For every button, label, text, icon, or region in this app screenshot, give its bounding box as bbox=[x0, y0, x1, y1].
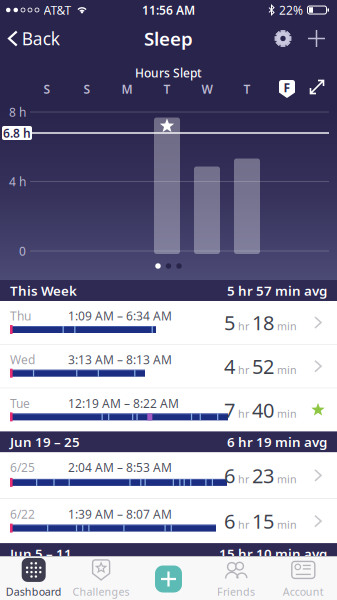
button[interactable]: Account bbox=[270, 556, 337, 600]
staticText: Back bbox=[22, 27, 60, 50]
staticText: Account bbox=[283, 584, 324, 599]
button[interactable] bbox=[135, 556, 202, 600]
staticText: 6 bbox=[224, 462, 235, 489]
staticText: 22% bbox=[279, 2, 303, 18]
staticText: 1:09 AM – 6:34 AM bbox=[68, 308, 172, 324]
staticText: 23 bbox=[252, 462, 274, 489]
staticText: 12:19 AM – 8:22 AM bbox=[68, 395, 179, 411]
button[interactable]: Back bbox=[0, 27, 60, 50]
button[interactable]: 6/25 bbox=[0, 452, 337, 498]
staticText: This Week bbox=[10, 282, 77, 299]
button[interactable]: Wed bbox=[0, 345, 337, 388]
staticText: Thu bbox=[10, 308, 31, 324]
staticText: 8 h bbox=[9, 104, 26, 120]
staticText: 4 bbox=[224, 353, 235, 379]
staticText: min bbox=[277, 472, 297, 486]
staticText: Dashboard bbox=[6, 584, 62, 599]
staticText: 6 bbox=[224, 508, 235, 534]
staticText: Friends bbox=[217, 584, 255, 599]
staticText: min bbox=[277, 363, 297, 377]
staticText: 6.8 h bbox=[3, 125, 31, 141]
staticText: S bbox=[83, 81, 90, 97]
staticText: min bbox=[277, 319, 297, 333]
staticText: 15 hr 10 min avg bbox=[219, 545, 327, 562]
staticText: 40 bbox=[252, 397, 274, 423]
staticText: 15 bbox=[252, 508, 274, 534]
button[interactable] bbox=[307, 77, 327, 97]
button[interactable]: Thu bbox=[0, 301, 337, 344]
staticText: hr bbox=[238, 472, 249, 486]
staticText: Wed bbox=[10, 352, 35, 368]
staticText: 5 bbox=[224, 309, 235, 336]
staticText: hr bbox=[238, 518, 249, 532]
staticText: 6/22 bbox=[10, 506, 35, 522]
staticText: W bbox=[201, 81, 212, 97]
staticText: hr bbox=[238, 363, 249, 377]
staticText: 11:56 AM bbox=[142, 2, 195, 18]
staticText: 1:39 AM – 8:07 AM bbox=[68, 506, 172, 522]
staticText: 5 hr 57 min avg bbox=[227, 282, 327, 299]
staticText: 3:13 AM – 8:13 AM bbox=[68, 352, 172, 368]
staticText: Jun 19 – 25 bbox=[10, 433, 80, 451]
staticText: 18 bbox=[252, 309, 274, 336]
button[interactable]: Dashboard bbox=[0, 556, 67, 600]
button[interactable]: 6/22 bbox=[0, 499, 337, 543]
staticText: 6 hr 19 min avg bbox=[227, 433, 327, 451]
staticText: S bbox=[43, 81, 50, 97]
staticText: Hours Slept bbox=[135, 65, 202, 81]
staticText: Sleep bbox=[144, 26, 193, 51]
staticText: hr bbox=[238, 406, 249, 421]
button[interactable]: Friends bbox=[202, 556, 270, 600]
staticText: Challenges bbox=[73, 584, 130, 599]
staticText: min bbox=[277, 406, 297, 421]
button[interactable]: Challenges bbox=[67, 556, 135, 600]
staticText: Tue bbox=[10, 395, 30, 411]
staticText: AT&T bbox=[43, 2, 71, 18]
button[interactable]: Tue bbox=[0, 388, 337, 431]
staticText: hr bbox=[238, 319, 249, 333]
staticText: 0 bbox=[19, 243, 26, 259]
staticText: 7 bbox=[224, 397, 235, 423]
staticText: min bbox=[277, 518, 297, 532]
staticText: 6/25 bbox=[10, 459, 35, 475]
button[interactable] bbox=[294, 30, 337, 47]
staticText: 52 bbox=[252, 353, 274, 379]
staticText: 4 h bbox=[9, 173, 26, 189]
staticText: Jun 5 – 11 bbox=[10, 545, 72, 562]
staticText: F bbox=[283, 79, 290, 95]
staticText: T bbox=[243, 81, 250, 97]
staticText: 2:04 AM – 8:53 AM bbox=[68, 459, 172, 475]
button[interactable] bbox=[272, 27, 294, 49]
staticText: T bbox=[163, 81, 170, 97]
staticText: M bbox=[121, 81, 132, 97]
